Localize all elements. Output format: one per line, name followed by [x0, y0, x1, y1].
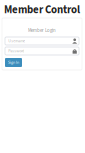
staticText: Member Control — [4, 2, 80, 18]
button[interactable]: Password — [5, 47, 79, 55]
staticText: Member Login — [28, 27, 56, 34]
staticText: Username — [8, 38, 25, 44]
staticText: Sign In — [8, 60, 19, 65]
staticText: Password — [8, 48, 24, 54]
button[interactable]: Sign In — [5, 58, 22, 67]
button[interactable]: Username — [5, 37, 79, 45]
